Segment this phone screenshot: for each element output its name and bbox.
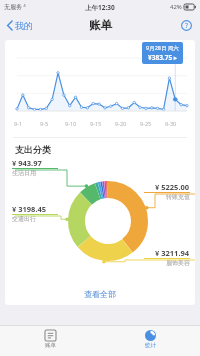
staticText: 9-30 (165, 120, 177, 127)
staticText: ¥ 943.97 (12, 158, 42, 168)
button[interactable]: 我的 (5, 18, 35, 33)
staticText: 9月28日 周六 (146, 44, 179, 52)
staticText: 账单 (45, 342, 56, 349)
staticText: 9-15 (90, 120, 102, 127)
staticText: 9-25 (140, 120, 152, 127)
staticText: 42% (170, 3, 182, 11)
staticText: 交通出行 (12, 215, 36, 223)
staticText: 转账充值 (166, 193, 190, 201)
staticText: 9-1 (14, 120, 23, 127)
button[interactable]: ¥ 943.97 (12, 158, 58, 177)
staticText: 上午12:30 (85, 3, 115, 12)
staticText: 9-10 (65, 120, 77, 127)
staticText: 无服务 ᵟ (4, 3, 26, 11)
staticText: 我的 (15, 20, 33, 31)
staticText: 9-20 (115, 120, 127, 127)
staticText: ¥ 5225.00 (155, 182, 190, 192)
staticText: 生活日用 (12, 169, 36, 177)
button[interactable]: Help (179, 18, 194, 33)
button[interactable]: ¥ 3211.94 (144, 248, 190, 267)
staticText: ¥383.75 ▸ (148, 53, 178, 62)
staticText: 支出分类 (15, 144, 51, 155)
button[interactable]: 查看全部 (5, 283, 195, 305)
button[interactable]: 账单 (0, 326, 100, 356)
staticText: ¥ 3198.45 (12, 204, 47, 214)
staticText: ¥ 3211.94 (155, 248, 190, 258)
button[interactable]: 统计 (100, 326, 200, 356)
button[interactable]: ¥ 3198.45 (12, 204, 58, 223)
staticText: ? (185, 21, 189, 31)
staticText: 账单 (89, 18, 112, 32)
staticText: 统计 (145, 342, 156, 349)
staticText: 9-5 (40, 120, 49, 127)
staticText: 服饰美容 (166, 259, 190, 267)
button[interactable]: ¥ 5225.00 (144, 182, 190, 201)
staticText: 查看全部 (84, 289, 116, 299)
